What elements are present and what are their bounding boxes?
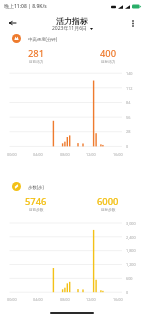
staticText: 12:00	[86, 152, 96, 157]
staticText: 140	[126, 71, 133, 76]
staticText: 目前活力	[29, 60, 44, 65]
staticText: 3,000	[126, 221, 136, 226]
button[interactable]: 中高强度(分钟)	[12, 34, 144, 43]
staticText: 600	[126, 276, 133, 281]
staticText: 84	[126, 100, 131, 105]
staticText: 00:00	[7, 297, 17, 302]
staticText: 112	[126, 86, 133, 91]
button[interactable]: 2023年11月6日	[52, 25, 93, 32]
staticText: 1,200	[126, 262, 136, 267]
staticText: 12:00	[86, 297, 96, 302]
staticText: 目标步数	[101, 208, 116, 213]
staticText: 晚上11:08 | 8.9K/s	[4, 3, 47, 10]
staticText: 0	[126, 290, 129, 295]
button[interactable]: Back	[3, 13, 22, 32]
staticText: 28	[126, 129, 131, 134]
staticText: 6000	[97, 195, 119, 208]
staticText: 目标活力	[101, 60, 116, 65]
staticText: 00:00	[7, 152, 17, 157]
staticText: 步数(步)	[28, 184, 44, 190]
staticText: 16:00	[113, 152, 123, 157]
staticText: 281	[28, 47, 45, 60]
button[interactable]: 步数(步)	[12, 182, 144, 191]
staticText: 08:00	[60, 152, 70, 157]
staticText: 中高强度(分钟)	[28, 36, 57, 42]
button[interactable]: More options	[123, 14, 142, 33]
staticText: 活力指标	[56, 16, 88, 26]
staticText: 400	[100, 47, 117, 60]
staticText: 04:00	[33, 297, 43, 302]
staticText: 56	[126, 115, 131, 120]
staticText: 2,400	[126, 235, 136, 240]
staticText: 04:00	[33, 152, 43, 157]
staticText: 目前步数	[29, 208, 44, 213]
staticText: 0	[126, 144, 129, 149]
staticText: 2023年11月6日	[52, 25, 88, 32]
staticText: 5746	[25, 195, 47, 208]
staticText: 1,800	[126, 248, 136, 253]
staticText: 08:00	[60, 297, 70, 302]
staticText: 16:00	[113, 297, 123, 302]
